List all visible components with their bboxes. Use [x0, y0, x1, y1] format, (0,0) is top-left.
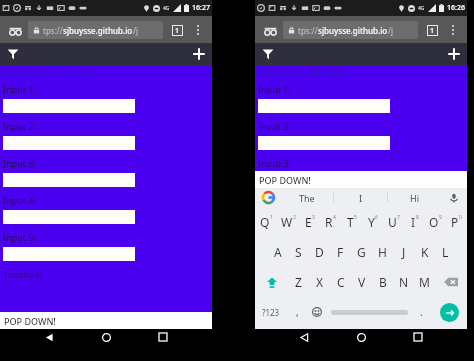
button[interactable]: Shift [255, 267, 288, 297]
button[interactable]: J [393, 237, 414, 267]
button[interactable]: Add [190, 45, 208, 63]
staticText: /j [133, 25, 139, 36]
staticText: The [299, 192, 315, 204]
staticText: tps:// [298, 25, 318, 36]
button[interactable]: , [287, 297, 307, 327]
button[interactable]: M [414, 267, 435, 297]
staticText: F [337, 244, 344, 260]
button[interactable]: Backspace [435, 267, 467, 297]
staticText: B [379, 274, 387, 290]
staticText: I [411, 214, 416, 230]
staticText: 1 [175, 26, 180, 35]
button[interactable]: Tabs [423, 21, 441, 39]
button[interactable]: Add [445, 45, 463, 63]
staticText: H [378, 244, 387, 260]
button[interactable]: Google [255, 188, 281, 207]
button[interactable]: K [414, 237, 435, 267]
button[interactable]: Y [362, 207, 383, 237]
button[interactable]: Emoji [307, 297, 327, 327]
button[interactable]: S [288, 237, 309, 267]
button[interactable]: Incognito [5, 20, 25, 40]
staticText: X [316, 274, 324, 290]
button[interactable]: Recents [155, 329, 171, 345]
staticText: sjbuysse.github.io [63, 25, 133, 36]
staticText: , [296, 305, 299, 319]
button[interactable]: W [277, 207, 299, 237]
staticText: K [421, 244, 429, 260]
button[interactable]: Space [327, 297, 411, 327]
button[interactable]: More options [189, 21, 207, 39]
staticText: S [295, 244, 302, 260]
button[interactable]: L [435, 237, 456, 267]
button[interactable]: T [341, 207, 362, 237]
button[interactable]: Back [41, 329, 57, 345]
button[interactable]: C [330, 267, 351, 297]
button[interactable]: Recents [410, 329, 426, 345]
button[interactable]: Enter [431, 297, 467, 327]
staticText: 1 [430, 26, 435, 35]
button[interactable]: N [393, 267, 414, 297]
button[interactable]: Home [353, 329, 369, 345]
button[interactable]: D [309, 237, 330, 267]
button[interactable]: Home [98, 329, 114, 345]
button[interactable]: Incognito [260, 20, 280, 40]
staticText: 4G [163, 5, 170, 12]
button[interactable]: I [404, 207, 425, 237]
staticText: O [429, 214, 439, 230]
button[interactable]: Filter [4, 45, 22, 63]
button[interactable]: Tabs [168, 21, 186, 39]
staticText: A [274, 244, 282, 260]
button[interactable]: Q [255, 207, 277, 237]
button[interactable]: E [299, 207, 320, 237]
staticText: R [325, 214, 333, 230]
button[interactable]: Back [296, 329, 312, 345]
staticText: Input 3: [3, 157, 36, 169]
button[interactable]: V [351, 267, 372, 297]
button[interactable]: More options [444, 21, 462, 39]
button[interactable]: POP DOWN! [0, 312, 212, 329]
button[interactable]: A [267, 237, 288, 267]
staticText: Q [260, 214, 270, 230]
button[interactable]: Filter [259, 45, 277, 63]
button[interactable]: O [425, 207, 446, 237]
button[interactable]: G [351, 237, 372, 267]
button[interactable]: Z [288, 267, 309, 297]
button[interactable]: The [281, 188, 333, 207]
button[interactable]: U [383, 207, 404, 237]
button[interactable]: tps:// [28, 21, 163, 39]
button[interactable]: Voice input [441, 188, 467, 207]
staticText: POP DOWN! [259, 174, 311, 186]
staticText: Y [368, 214, 375, 230]
button[interactable]: B [372, 267, 393, 297]
staticText: 5 [354, 214, 357, 221]
staticText: sjbuysse.github.io [318, 25, 388, 36]
button[interactable]: P [446, 207, 467, 237]
staticText: Input 1: [3, 83, 36, 95]
staticText: U [388, 214, 397, 230]
button[interactable]: . [411, 297, 431, 327]
staticText: D [315, 244, 324, 260]
button[interactable]: F [330, 237, 351, 267]
button[interactable]: Hi [388, 188, 441, 207]
staticText: Wizard app - full recipe [3, 66, 91, 77]
button[interactable]: I [334, 188, 387, 207]
button[interactable]: R [320, 207, 341, 237]
staticText: W [281, 214, 293, 230]
staticText: . [420, 305, 423, 319]
button[interactable]: ?123 [255, 297, 287, 327]
staticText: C [337, 274, 345, 290]
staticText: J [402, 244, 406, 260]
button[interactable]: X [309, 267, 330, 297]
button[interactable]: H [372, 237, 393, 267]
button[interactable]: POP DOWN! [255, 171, 467, 188]
button[interactable]: tps:// [283, 21, 418, 39]
staticText: /j [388, 25, 394, 36]
staticText: I [359, 192, 363, 204]
